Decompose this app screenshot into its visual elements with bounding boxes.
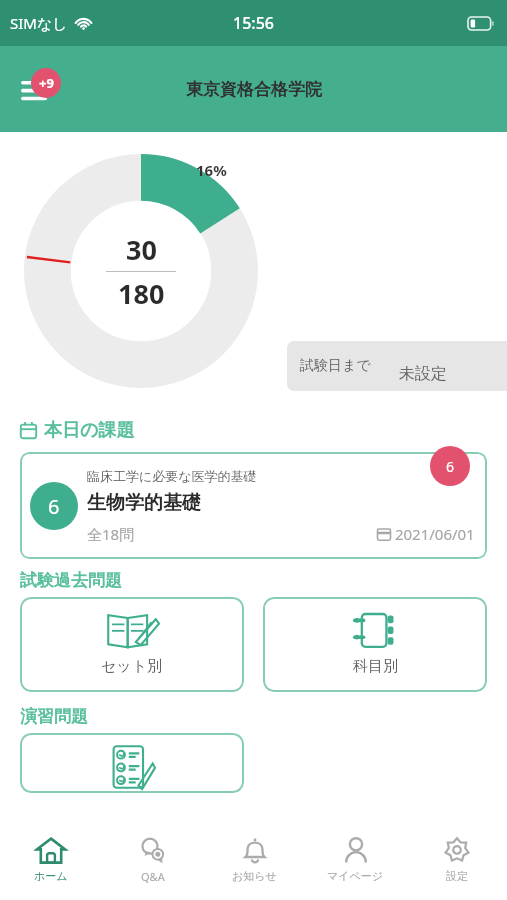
staticText: 試験過去問題 — [20, 570, 122, 591]
staticText: 16% — [196, 160, 227, 180]
staticText: 15:56 — [233, 12, 274, 34]
staticText: 試験日まで — [300, 357, 371, 375]
button[interactable]: セット別 — [20, 597, 244, 692]
staticText: 6 — [48, 493, 60, 520]
button[interactable]: 6 — [430, 446, 470, 486]
staticText: Q&A — [141, 869, 165, 884]
staticText: ホーム — [34, 869, 68, 883]
staticText: セット別 — [101, 657, 163, 676]
staticText: 演習問題 — [20, 706, 88, 727]
button[interactable] — [20, 733, 244, 793]
staticText: 東京資格合格学院 — [186, 79, 322, 100]
staticText: SIMなし — [10, 13, 68, 33]
staticText: 6 — [446, 457, 455, 476]
button[interactable]: ホーム — [0, 826, 102, 900]
button[interactable]: 6 — [20, 452, 487, 559]
staticText: 180 — [118, 275, 165, 312]
button[interactable]: 科目別 — [263, 597, 487, 692]
staticText: マイページ — [327, 869, 384, 883]
staticText: +9 — [39, 74, 54, 92]
staticText: お知らせ — [232, 869, 277, 883]
staticText: 生物学的基礎 — [87, 491, 201, 515]
button[interactable]: Progress 30 of 180 — [24, 154, 258, 388]
staticText: 30 — [126, 231, 157, 268]
staticText: 設定 — [446, 869, 468, 883]
button[interactable]: マイページ — [305, 826, 406, 900]
button[interactable]: 設定 — [406, 826, 507, 900]
button[interactable]: お知らせ — [204, 826, 305, 900]
staticText: 2021/06/01 — [391, 524, 475, 544]
button[interactable]: 試験日まで — [287, 341, 507, 391]
staticText: 臨床工学に必要な医学的基礎 — [87, 468, 257, 484]
staticText: 本日の課題 — [44, 419, 135, 442]
staticText: 科目別 — [353, 657, 398, 676]
button[interactable]: Menu — [8, 61, 64, 117]
staticText: 未設定 — [399, 364, 447, 384]
button[interactable]: Q&A — [102, 826, 204, 900]
staticText: 全18問 — [87, 524, 135, 544]
